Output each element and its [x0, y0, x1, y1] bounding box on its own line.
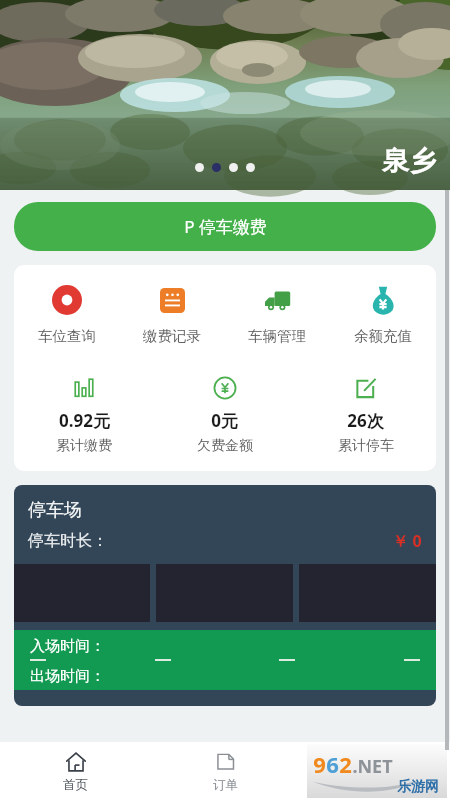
- staticText: 余额充值: [354, 327, 412, 345]
- button[interactable]: 车辆管理: [224, 281, 330, 347]
- staticText: 我的: [363, 777, 388, 793]
- staticText: 6: [326, 749, 339, 779]
- button[interactable]: [229, 163, 238, 172]
- button[interactable]: [195, 163, 204, 172]
- staticText: 9: [313, 749, 326, 779]
- button[interactable]: 首页: [0, 742, 150, 800]
- button[interactable]: 余额充值: [330, 281, 436, 347]
- staticText: P 停车缴费: [184, 215, 267, 238]
- staticText: 累计缴费: [56, 437, 112, 455]
- staticText: 入场时间：: [30, 637, 105, 656]
- staticText: 2: [339, 749, 352, 779]
- staticText: ￥ 0: [392, 530, 422, 552]
- staticText: 0元: [211, 409, 238, 432]
- staticText: 泉乡: [382, 144, 436, 178]
- button[interactable]: 订单: [150, 742, 300, 800]
- button[interactable]: 0元: [154, 373, 295, 455]
- other: 我的: [365, 751, 386, 772]
- staticText: 缴费记录: [143, 327, 201, 345]
- staticText: .NET: [352, 754, 393, 779]
- other: 订单: [215, 751, 236, 772]
- other: 车位查询: [52, 285, 82, 315]
- other: 余额充值: [368, 285, 398, 315]
- other: 首页: [65, 751, 87, 773]
- staticText: 首页: [63, 777, 88, 793]
- staticText: 出场时间：: [30, 667, 105, 686]
- button[interactable]: [212, 163, 221, 172]
- other: 车辆管理: [262, 285, 292, 315]
- button[interactable]: 26次: [295, 373, 436, 455]
- staticText: 订单: [213, 777, 238, 793]
- staticText: 欠费金额: [197, 437, 253, 455]
- button[interactable]: 0.92元: [14, 373, 154, 455]
- button[interactable]: P 停车缴费: [14, 202, 436, 251]
- button[interactable]: 停车场: [14, 485, 436, 706]
- staticText: 累计停车: [338, 437, 394, 455]
- staticText: 26次: [347, 409, 384, 432]
- staticText: 停车场: [28, 499, 82, 522]
- staticText: 乐游网: [397, 778, 439, 796]
- staticText: 车位查询: [38, 327, 96, 345]
- staticText: 0.92元: [59, 409, 110, 432]
- button[interactable]: 我的: [300, 742, 450, 800]
- other: 缴费记录: [160, 288, 185, 313]
- button[interactable]: 缴费记录: [119, 281, 224, 347]
- staticText: 车辆管理: [248, 327, 306, 345]
- button[interactable]: [246, 163, 255, 172]
- staticText: 停车时长：: [28, 531, 108, 551]
- button[interactable]: 车位查询: [14, 281, 119, 347]
